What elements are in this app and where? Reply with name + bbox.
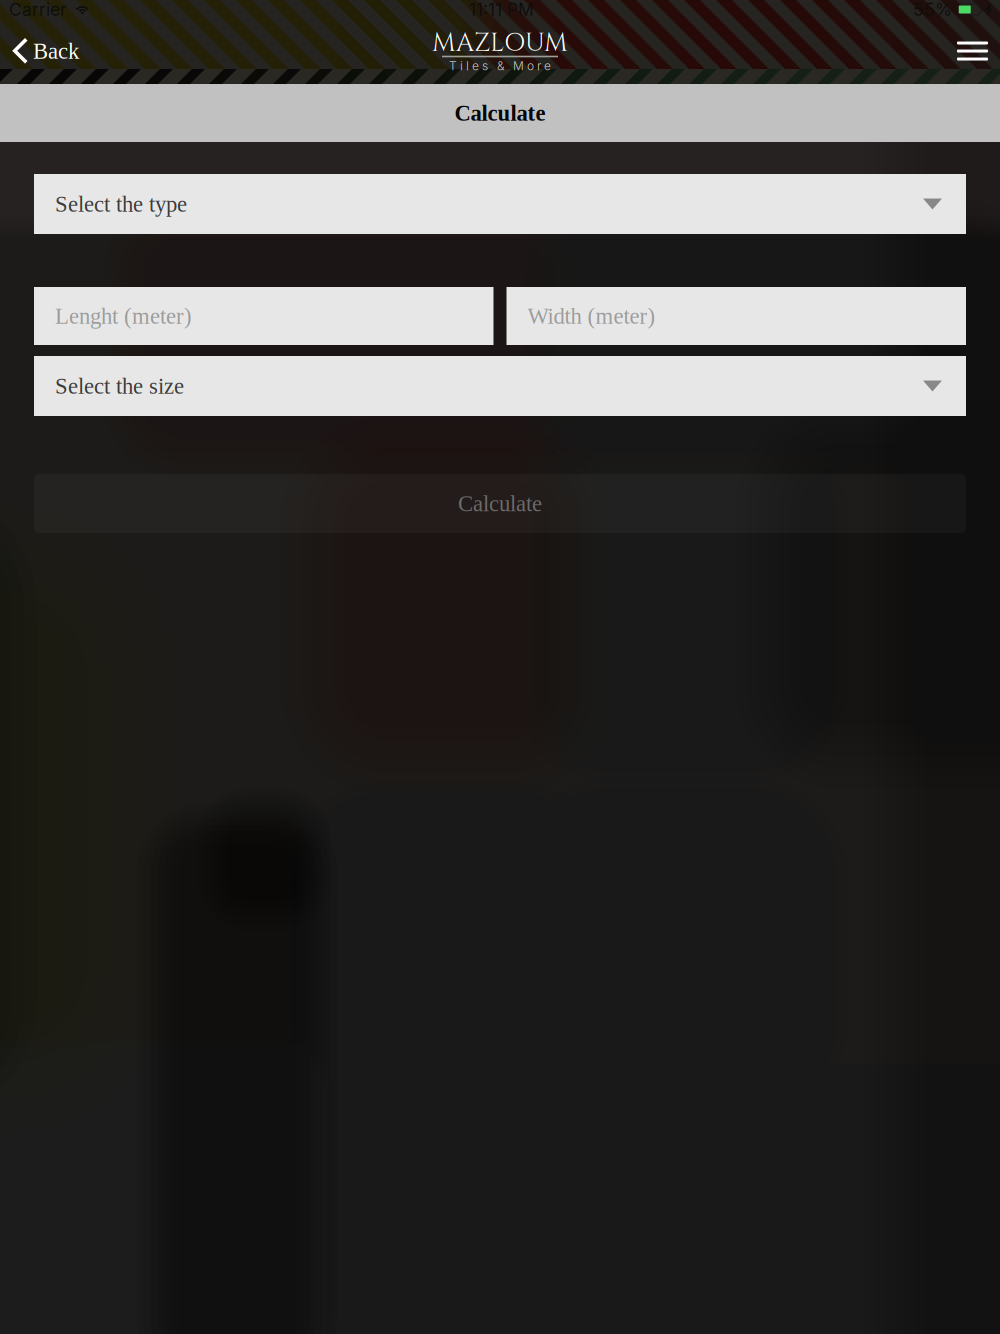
staticText: 11:11 PM xyxy=(469,0,534,20)
button[interactable]: Menu xyxy=(939,23,1000,78)
staticText: Lenght (meter) xyxy=(55,303,192,328)
staticText: Carrier xyxy=(9,0,67,20)
button[interactable]: Select the size xyxy=(34,356,966,416)
staticText: 55% xyxy=(913,0,952,20)
staticText: Select the type xyxy=(55,191,187,216)
button[interactable]: Select the type xyxy=(34,174,966,234)
staticText: MAZLOUM xyxy=(432,26,568,60)
button[interactable]: Back xyxy=(0,23,93,78)
staticText: Back xyxy=(33,38,79,63)
staticText: Calculate xyxy=(458,491,542,516)
staticText: Select the size xyxy=(55,373,184,398)
staticText: T i l e s & M o r e xyxy=(449,58,551,73)
staticText: Calculate xyxy=(454,100,545,125)
staticText: Width (meter) xyxy=(527,303,655,328)
button[interactable]: Calculate xyxy=(34,474,966,533)
